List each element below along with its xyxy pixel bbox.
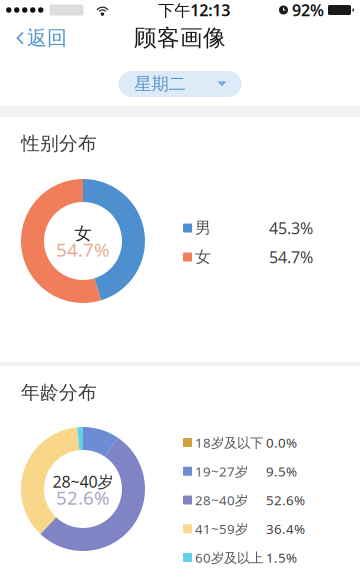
staticText: 女 (195, 247, 211, 267)
staticText: 性别分布 (21, 132, 97, 155)
staticText: 52.6% (266, 491, 305, 509)
staticText: 54.7% (56, 237, 110, 262)
staticText: 9.5% (266, 462, 297, 480)
button[interactable]: 返回 (0, 20, 77, 56)
staticText: 女 (74, 223, 91, 244)
staticText: 顾客画像 (134, 24, 226, 52)
staticText: 0.0% (266, 434, 297, 451)
button[interactable]: 星期二 (118, 71, 241, 97)
staticText: 男 (195, 218, 211, 238)
staticText: 返回 (27, 26, 67, 50)
staticText: 星期二 (134, 73, 185, 95)
staticText: 36.4% (266, 520, 305, 538)
staticText: 19~27岁 (195, 462, 248, 480)
staticText: 54.7% (269, 246, 313, 268)
staticText: 45.3% (269, 217, 313, 239)
staticText: 60岁及以上 (195, 549, 263, 566)
staticText: 92% (292, 0, 324, 21)
staticText: 18岁及以下 (195, 434, 263, 451)
staticText: 28~40岁 (195, 491, 248, 509)
staticText: 年龄分布 (21, 381, 97, 404)
staticText: 28~40岁 (52, 471, 113, 492)
staticText: 52.6% (56, 485, 110, 510)
staticText: 1.5% (266, 549, 297, 566)
staticText: 下午12:13 (158, 0, 230, 21)
staticText: 41~59岁 (195, 520, 248, 538)
